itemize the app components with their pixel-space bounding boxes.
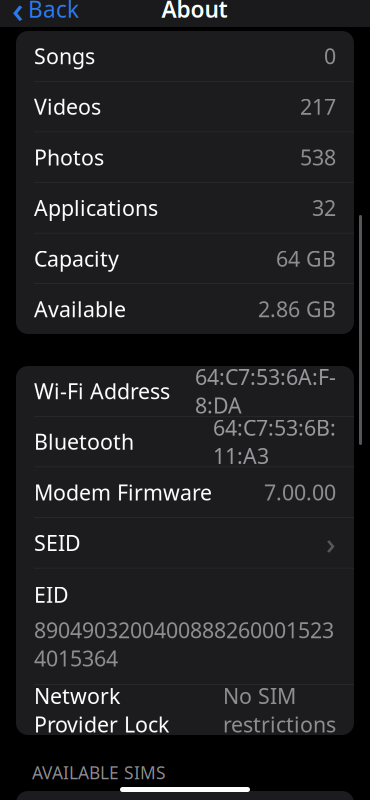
staticText: 64 GB (276, 244, 336, 272)
staticText: 64:C7:53:6A:F8:DA (195, 363, 336, 419)
staticText: Back (28, 0, 79, 24)
button[interactable]: Applications (16, 183, 354, 233)
staticText: No SIM restrictions (223, 682, 336, 738)
button[interactable]: Wi-Fi Address (16, 366, 354, 416)
staticText: Applications (34, 194, 158, 222)
staticText: ‹ (12, 0, 24, 33)
staticText: 2.86 GB (258, 295, 336, 323)
staticText: Bluetooth (34, 427, 134, 456)
staticText: 64:C7:53:6B:11:A3 (213, 413, 336, 470)
button[interactable]: Bluetooth (16, 417, 354, 467)
button[interactable]: SEID (16, 518, 354, 568)
staticText: Modem Firmware (34, 478, 212, 506)
staticText: 7.00.00 (264, 478, 336, 506)
button[interactable]: Modem Firmware (16, 467, 354, 517)
staticText: Wi-Fi Address (34, 377, 170, 405)
staticText: EID (34, 580, 69, 609)
staticText: › (326, 523, 336, 562)
staticText: Network Provider Lock (34, 682, 169, 738)
staticText: 32 (312, 194, 336, 222)
button[interactable]: Photos (16, 132, 354, 182)
staticText: Songs (34, 42, 95, 70)
button[interactable]: Network Provider Lock (16, 685, 354, 735)
staticText: Available (34, 295, 126, 323)
staticText: SEID (34, 529, 81, 557)
staticText: About (161, 0, 227, 24)
staticText: 89049032004008882600015234015364 (34, 616, 334, 672)
button[interactable]: EID (16, 568, 354, 684)
staticText: 0 (324, 42, 336, 70)
staticText: 217 (300, 92, 336, 121)
staticText: Capacity (34, 244, 119, 272)
button[interactable]: Songs (16, 31, 354, 81)
button[interactable]: ‹ (0, 0, 87, 27)
staticText: Videos (34, 92, 101, 121)
staticText: Photos (34, 143, 104, 171)
button[interactable]: Available (16, 284, 354, 334)
staticText: AVAILABLE SIMS (32, 761, 166, 784)
staticText: 538 (300, 143, 336, 171)
button[interactable]: Videos (16, 82, 354, 132)
button[interactable]: Capacity (16, 233, 354, 283)
button[interactable]: IMEI (16, 791, 354, 800)
